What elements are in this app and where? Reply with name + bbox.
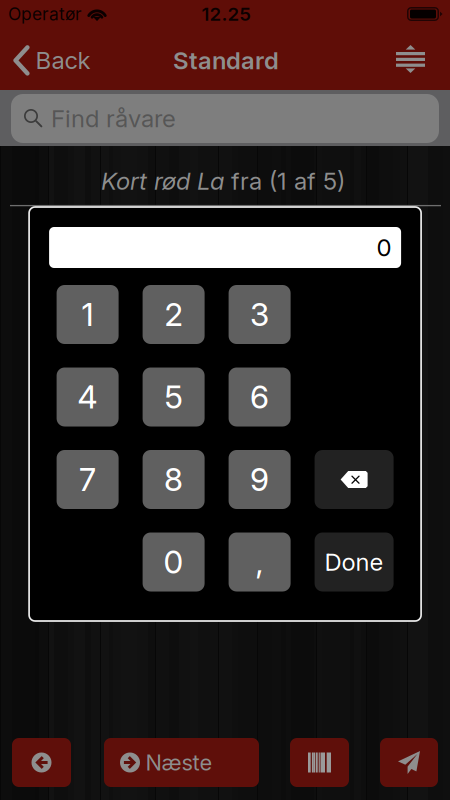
staticText: 7 (79, 460, 96, 498)
staticText: Operatør (8, 3, 82, 24)
button[interactable]: Previous (12, 738, 71, 787)
button[interactable]: Sort (388, 37, 432, 81)
button[interactable]: 1 (57, 285, 119, 344)
staticText: Næste (145, 749, 212, 776)
button[interactable]: 2 (143, 285, 205, 344)
button[interactable]: 9 (229, 450, 291, 509)
staticText: , (256, 543, 264, 581)
button[interactable]: 0 (143, 532, 205, 591)
button[interactable]: 4 (57, 367, 119, 426)
staticText: 5 (165, 378, 183, 416)
button[interactable]: Send (380, 738, 438, 787)
button[interactable]: Delete (315, 450, 394, 509)
staticText: Back (35, 46, 90, 75)
button[interactable]: 7 (57, 450, 119, 509)
staticText: fra (1 af 5) (224, 166, 345, 195)
staticText: 0 (164, 543, 184, 581)
staticText: Kort rød La (101, 166, 224, 195)
staticText: 4 (78, 378, 98, 416)
staticText: 12.25 (201, 3, 250, 25)
button[interactable]: , (229, 532, 291, 591)
staticText: Find råvare (51, 104, 176, 133)
button[interactable]: Scan barcode (290, 738, 349, 787)
button[interactable]: Back (13, 38, 97, 82)
button[interactable]: Næste (104, 738, 259, 787)
button[interactable]: 3 (229, 285, 291, 344)
button[interactable]: 5 (143, 367, 205, 426)
button[interactable]: 6 (229, 367, 291, 426)
staticText: 8 (164, 460, 183, 498)
staticText: 1 (82, 295, 94, 333)
staticText: 3 (250, 295, 269, 333)
button[interactable]: 8 (143, 450, 205, 509)
staticText: 9 (250, 460, 269, 498)
staticText: Done (325, 547, 384, 576)
button[interactable]: Done (315, 532, 394, 591)
staticText: 6 (250, 378, 269, 416)
staticText: 2 (165, 295, 183, 333)
button[interactable]: Find råvare (11, 94, 439, 143)
staticText: 0 (377, 233, 392, 262)
staticText: Standard (173, 46, 279, 75)
